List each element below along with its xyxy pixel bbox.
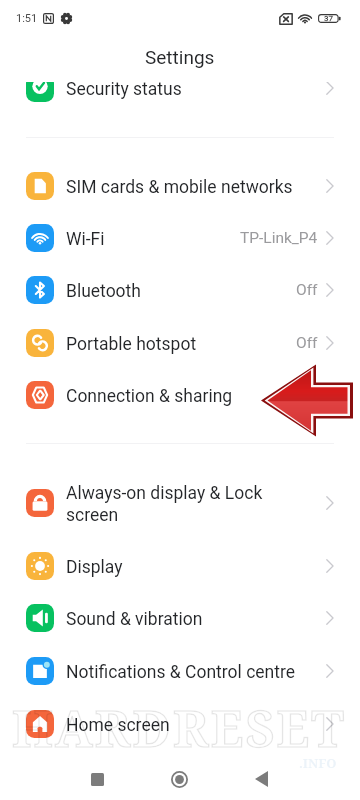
button[interactable]: Connection & sharing xyxy=(0,369,360,421)
button[interactable]: Bluetooth xyxy=(0,264,360,316)
staticText: Off xyxy=(296,334,318,352)
button[interactable]: Home screen xyxy=(0,698,360,750)
staticText: 37 xyxy=(324,14,333,23)
staticText: Always-on display & Lock screen xyxy=(66,483,263,526)
button[interactable]: Security status xyxy=(0,62,360,114)
staticText: Wi-Fi xyxy=(66,229,105,250)
button[interactable]: Back xyxy=(234,758,289,800)
button[interactable]: Always-on display & Lock screen xyxy=(0,477,360,529)
button[interactable]: Notifications & Control centre xyxy=(0,645,360,697)
staticText: Portable hotspot xyxy=(66,334,197,355)
staticText: Connection & sharing xyxy=(66,386,233,407)
staticText: TP-Link_P4 xyxy=(240,229,318,247)
staticText: Security status xyxy=(66,79,182,100)
button[interactable]: SIM cards & mobile networks xyxy=(0,160,360,212)
staticText: Display xyxy=(66,557,123,578)
staticText: Bluetooth xyxy=(66,281,141,302)
staticText: .INFO xyxy=(299,754,337,772)
staticText: Sound & vibration xyxy=(66,609,203,630)
button[interactable]: Display xyxy=(0,540,360,592)
staticText: Settings xyxy=(145,46,215,68)
button[interactable]: Recents xyxy=(70,758,125,800)
staticText: HARDRESET xyxy=(12,694,346,762)
staticText: Home screen xyxy=(66,715,170,736)
staticText: SIM cards & mobile networks xyxy=(66,177,293,198)
button[interactable]: Home xyxy=(152,758,207,800)
button[interactable]: Portable hotspot xyxy=(0,317,360,369)
button[interactable]: Wi-Fi xyxy=(0,212,360,264)
staticText: Off xyxy=(296,281,318,299)
staticText: Notifications & Control centre xyxy=(66,662,296,683)
button[interactable]: Sound & vibration xyxy=(0,592,360,644)
staticText: 1:51 xyxy=(16,12,38,25)
